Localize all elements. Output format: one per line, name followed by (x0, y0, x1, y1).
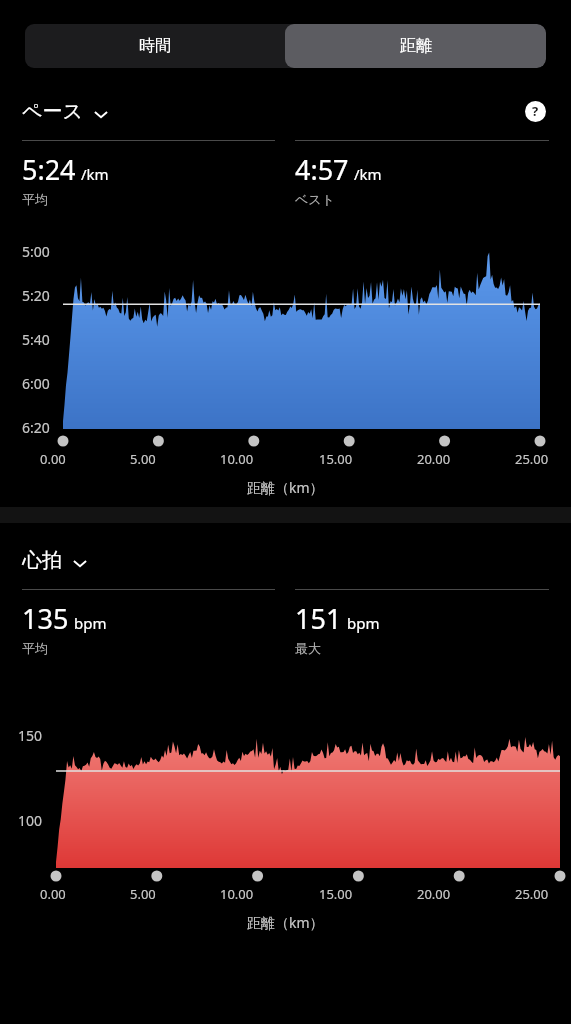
button[interactable]: 心拍 (22, 548, 88, 573)
staticText: 距離 (400, 36, 432, 56)
staticText: 5:20 (22, 286, 50, 305)
staticText: 5:00 (22, 242, 50, 261)
staticText: 6:20 (22, 418, 50, 433)
staticText: 距離（km） (247, 913, 324, 932)
staticText: 10.00 (220, 885, 254, 903)
staticText: bpm (74, 613, 107, 633)
staticText: 4:57 (295, 151, 349, 188)
button[interactable]: 151 (295, 589, 549, 656)
staticText: 25.00 (515, 450, 549, 468)
staticText: 25.00 (515, 885, 549, 903)
staticText: bpm (347, 613, 380, 633)
staticText: /km (354, 164, 382, 184)
staticText: 20.00 (417, 450, 451, 468)
staticText: 最大 (295, 640, 321, 656)
staticText: 0.00 (40, 450, 66, 468)
staticText: 135 (22, 600, 69, 637)
staticText: 0.00 (40, 885, 66, 903)
staticText: 151 (295, 600, 342, 637)
button[interactable]: 5:24 (22, 140, 275, 207)
staticText: 15.00 (319, 450, 353, 468)
staticText: 5:40 (22, 330, 50, 349)
button[interactable]: 4:57 (295, 140, 549, 207)
staticText: 15.00 (319, 885, 353, 903)
staticText: 距離（km） (247, 478, 324, 497)
staticText: 100 (18, 811, 43, 830)
button[interactable]: 135 (22, 589, 275, 656)
button[interactable]: Help (521, 97, 549, 125)
staticText: 時間 (139, 36, 171, 56)
staticText: 心拍 (22, 548, 62, 573)
staticText: 20.00 (417, 885, 451, 903)
staticText: 5.00 (130, 885, 156, 903)
staticText: 6:00 (22, 374, 50, 393)
staticText: 5:24 (22, 151, 76, 188)
staticText: 平均 (22, 640, 48, 656)
staticText: ペース (22, 99, 83, 124)
staticText: ? (532, 102, 539, 120)
button[interactable]: 時間 (25, 24, 285, 68)
staticText: 10.00 (220, 450, 254, 468)
button[interactable]: 距離 (285, 24, 546, 68)
staticText: /km (81, 164, 109, 184)
staticText: 5.00 (130, 450, 156, 468)
staticText: ベスト (295, 191, 335, 207)
staticText: 平均 (22, 191, 48, 207)
staticText: 150 (18, 726, 43, 745)
button[interactable]: ペース (22, 99, 109, 124)
